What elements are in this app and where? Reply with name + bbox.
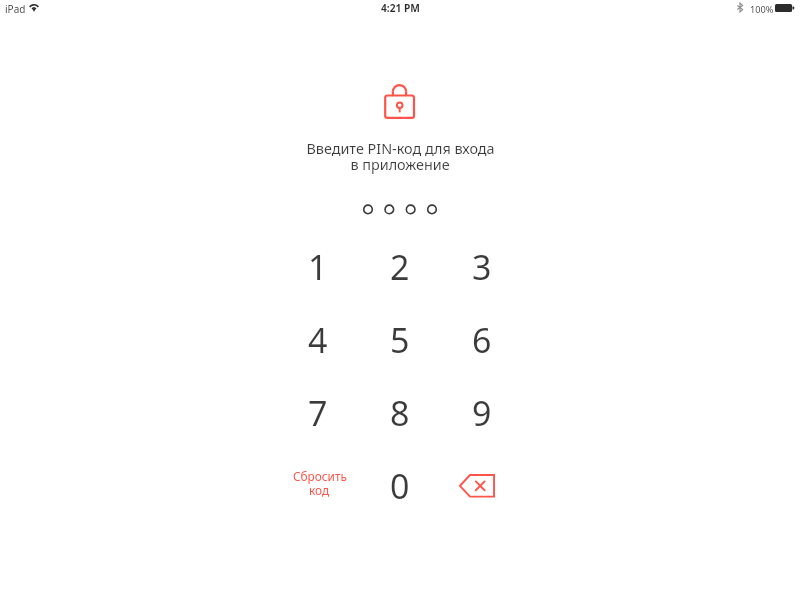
button[interactable]: Сбросить [279,449,360,522]
staticText: 2 [390,244,410,290]
button[interactable]: 8 [359,376,440,449]
button[interactable]: 2 [359,230,440,303]
staticText: 6 [472,317,492,363]
staticText: 100% [750,3,774,16]
staticText: Сбросить [293,468,347,484]
staticText: Введите PIN-код для входа [306,139,495,159]
staticText: 7 [308,390,328,436]
button[interactable]: 3 [441,230,522,303]
staticText: 4 [308,317,328,363]
staticText: код [309,482,330,498]
button[interactable]: 9 [441,376,522,449]
button[interactable]: 6 [441,303,522,376]
staticText: 3 [472,244,492,290]
staticText: 4:21 PM [381,1,420,15]
staticText: 1 [308,244,328,290]
button[interactable]: 7 [277,376,358,449]
staticText: в приложение [350,155,450,175]
button[interactable]: 4 [277,303,358,376]
button[interactable]: 1 [277,230,358,303]
button[interactable]: 5 [359,303,440,376]
button[interactable]: 0 [359,449,440,522]
staticText: 0 [390,463,410,509]
staticText: 9 [472,390,492,436]
button[interactable]: Delete [436,449,517,522]
staticText: 8 [390,390,410,436]
staticText: 5 [390,317,410,363]
staticText: iPad [5,2,26,16]
